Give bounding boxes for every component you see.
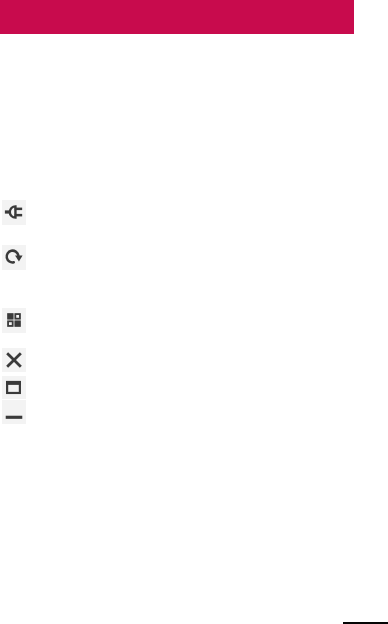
button[interactable]: Maximize [2,376,26,399]
button[interactable]: Extensions [2,200,26,225]
button[interactable]: Minimize [2,400,26,424]
button[interactable]: Close [2,348,26,372]
button[interactable]: Reload [2,245,26,270]
button[interactable]: Apps [2,308,26,333]
